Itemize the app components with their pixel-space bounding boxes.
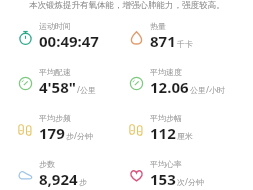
button[interactable]: 本次锻炼提升有氧体能，增强心肺能力，强度较高。 [0, 0, 253, 10]
staticText: 179 [39, 123, 65, 143]
staticText: 本次锻炼提升有氧体能，增强心肺能力，强度较高。 [29, 0, 225, 10]
staticText: 153 [150, 169, 176, 189]
staticText: 平均速度 [150, 67, 182, 77]
other: Average cadence [17, 121, 34, 138]
staticText: 千卡 [177, 39, 193, 49]
staticText: /公里 [77, 84, 96, 95]
staticText: 12.06 [150, 77, 189, 97]
staticText: 平均步幅 [150, 113, 182, 123]
staticText: 步/分钟 [66, 130, 93, 141]
other: Steps [17, 167, 34, 184]
button[interactable]: Calories [128, 21, 193, 51]
staticText: 871 [150, 31, 176, 51]
other: Average speed [128, 75, 145, 92]
button[interactable]: Average heart rate [128, 159, 204, 189]
other: Calories [128, 29, 145, 46]
staticText: 步 [79, 177, 87, 187]
staticText: 8,924 [39, 169, 78, 189]
staticText: 平均配速 [39, 67, 71, 77]
other: Average stride [128, 121, 145, 138]
staticText: 热量 [150, 21, 166, 31]
other: Duration [17, 29, 34, 46]
staticText: 运动时间 [39, 21, 71, 31]
button[interactable]: Average speed [128, 67, 225, 97]
staticText: 平均步频 [39, 113, 71, 123]
staticText: 4'58" [39, 77, 76, 97]
other: Average heart rate [128, 167, 145, 184]
staticText: 步数 [39, 159, 55, 169]
staticText: 平均心率 [150, 159, 182, 169]
button[interactable]: Average cadence [17, 113, 93, 143]
staticText: 112 [150, 123, 176, 143]
button[interactable]: Steps [17, 159, 87, 189]
button[interactable]: Average stride [128, 113, 193, 143]
staticText: 00:49:47 [39, 31, 99, 51]
staticText: 公里/小时 [190, 84, 225, 95]
button[interactable]: Average pace [17, 67, 96, 97]
staticText: 厘米 [177, 131, 193, 141]
other: Average pace [17, 75, 34, 92]
staticText: 次/分钟 [177, 176, 204, 187]
button[interactable]: Duration [17, 21, 100, 51]
